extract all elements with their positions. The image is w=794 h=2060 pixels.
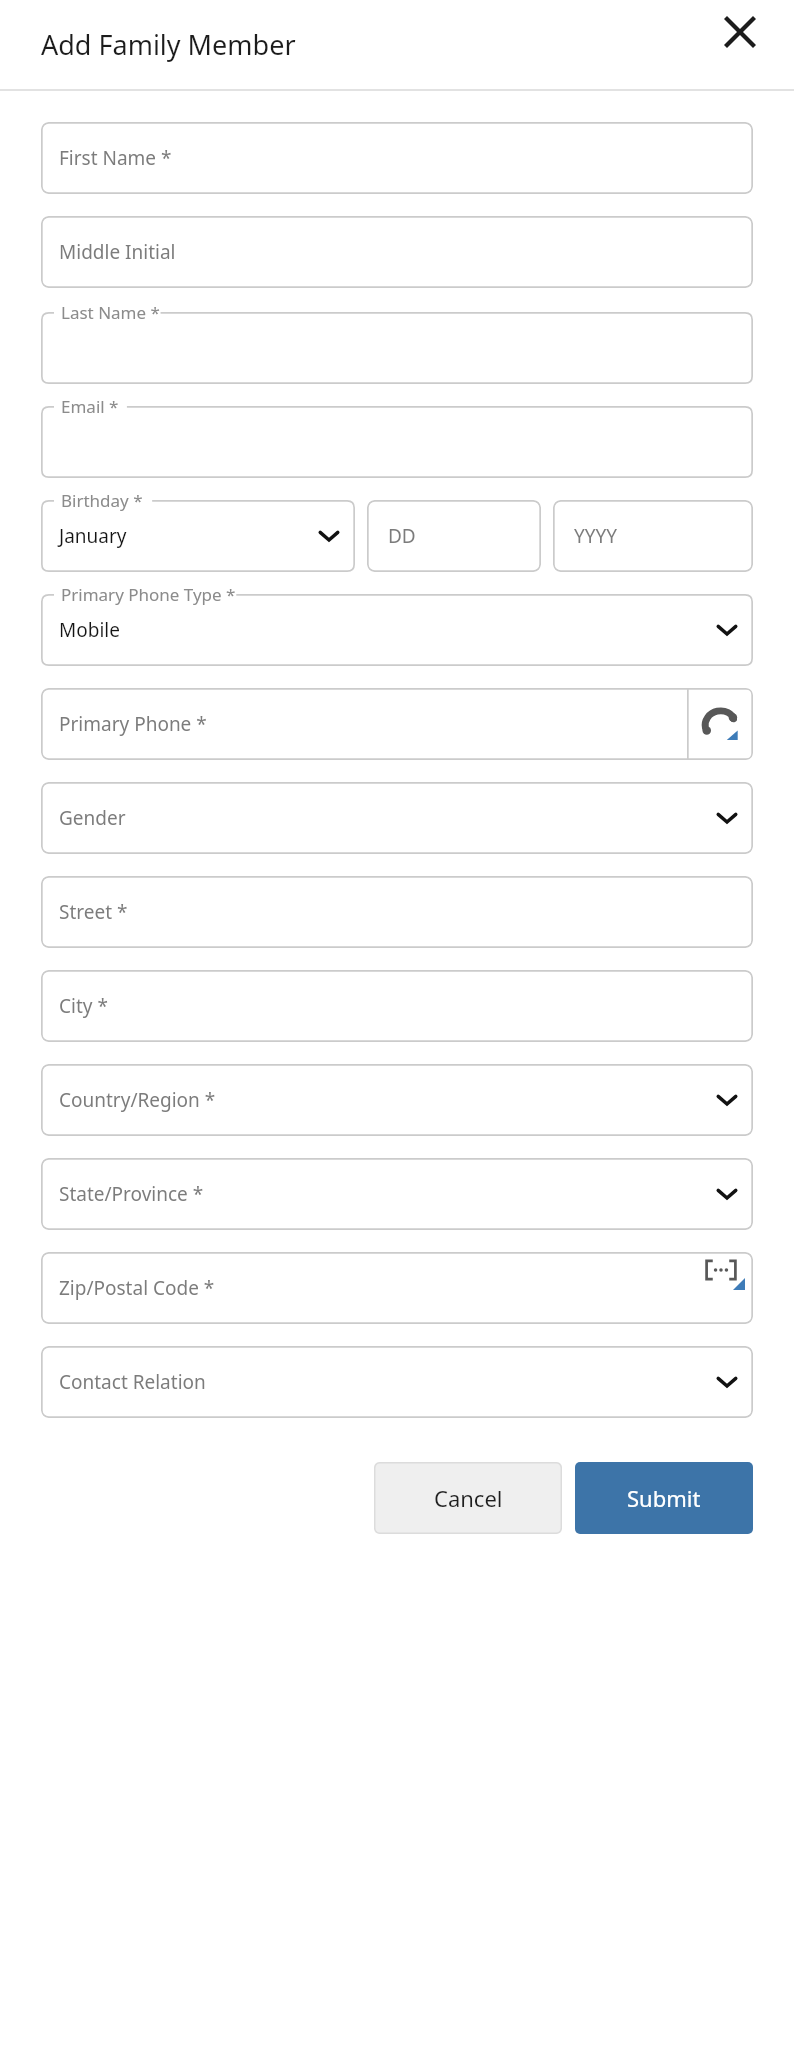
button[interactable]: Primary Phone Type * <box>41 594 753 666</box>
staticText: Last Name * <box>61 301 160 324</box>
staticText: YYYY <box>574 523 618 549</box>
staticText: Mobile <box>59 617 120 643</box>
button[interactable]: City * <box>41 970 753 1042</box>
staticText: Email * <box>61 395 119 418</box>
button[interactable]: Middle Initial <box>41 216 753 288</box>
staticText: Primary Phone * <box>59 711 207 737</box>
button[interactable]: Primary Phone * <box>41 688 753 760</box>
button[interactable]: YYYY <box>553 500 753 572</box>
button[interactable]: Scan code <box>705 1258 737 1282</box>
staticText: Gender <box>59 805 126 831</box>
staticText: Primary Phone Type * <box>61 583 236 606</box>
button[interactable]: Zip/Postal Code * <box>41 1252 753 1324</box>
staticText: DD <box>388 523 416 549</box>
staticText: State/Province * <box>59 1181 204 1207</box>
staticText: Zip/Postal Code * <box>59 1275 215 1301</box>
button[interactable]: Contact Relation <box>41 1346 753 1418</box>
button[interactable]: Country/Region * <box>41 1064 753 1136</box>
button[interactable]: Gender <box>41 782 753 854</box>
staticText: Submit <box>627 1483 701 1513</box>
button[interactable]: Birthday * <box>41 500 355 572</box>
staticText: Street * <box>59 899 128 925</box>
button[interactable]: Call <box>687 688 753 760</box>
staticText: Contact Relation <box>59 1369 206 1395</box>
button[interactable]: State/Province * <box>41 1158 753 1230</box>
button[interactable]: Last Name * <box>41 312 753 384</box>
button[interactable]: Street * <box>41 876 753 948</box>
staticText: Add Family Member <box>41 26 296 63</box>
button[interactable]: Cancel <box>374 1462 562 1534</box>
staticText: January <box>59 523 127 549</box>
staticText: Country/Region * <box>59 1087 216 1113</box>
button[interactable]: DD <box>367 500 541 572</box>
staticText: Cancel <box>434 1483 503 1513</box>
button[interactable]: First Name * <box>41 122 753 194</box>
button[interactable]: Close <box>714 6 766 58</box>
staticText: First Name * <box>59 145 172 171</box>
button[interactable]: Email * <box>41 406 753 478</box>
staticText: Middle Initial <box>59 239 176 265</box>
staticText: Birthday * <box>61 489 143 512</box>
button[interactable]: Submit <box>575 1462 753 1534</box>
staticText: City * <box>59 993 108 1019</box>
